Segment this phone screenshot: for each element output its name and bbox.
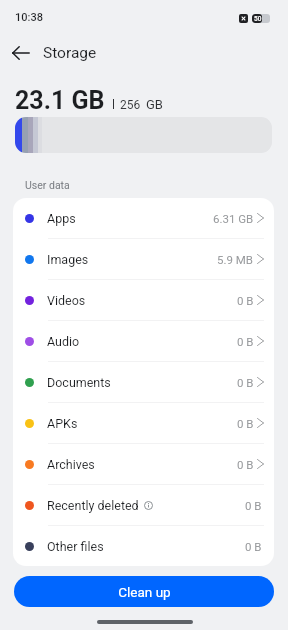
button[interactable]: Documents: [13, 362, 274, 402]
staticText: Storage: [43, 44, 97, 62]
staticText: 10:38: [15, 11, 43, 24]
button[interactable]: Other files: [13, 526, 274, 566]
staticText: 256: [120, 98, 141, 112]
staticText: 0 B: [245, 540, 262, 553]
staticText: Apps: [47, 211, 76, 226]
staticText: Videos: [47, 293, 86, 308]
other: Battery 50 percent: [252, 14, 270, 23]
button[interactable]: Back: [5, 37, 37, 69]
staticText: 5.9 MB: [217, 253, 254, 266]
staticText: 6.31 GB: [213, 212, 254, 225]
button[interactable]: Videos: [13, 280, 274, 320]
staticText: Other files: [47, 539, 104, 554]
staticText: Recently deleted: [47, 498, 139, 513]
staticText: 0 B: [237, 294, 254, 307]
staticText: Images: [47, 252, 89, 267]
staticText: User data: [25, 179, 70, 191]
staticText: Archives: [47, 457, 95, 472]
staticText: 0 B: [237, 335, 254, 348]
button[interactable]: Clean up: [14, 576, 274, 607]
staticText: Documents: [47, 375, 111, 390]
staticText: 23.1 GB: [15, 86, 105, 115]
button[interactable]: Recently deleted: [13, 485, 274, 525]
staticText: 0 B: [245, 499, 262, 512]
staticText: 0 B: [237, 376, 254, 389]
staticText: APKs: [47, 416, 78, 431]
staticText: Clean up: [118, 584, 171, 600]
button[interactable]: Audio: [13, 321, 274, 361]
staticText: 0 B: [237, 417, 254, 430]
button[interactable]: Images: [13, 239, 274, 279]
other: Silent mode: [239, 14, 248, 23]
button[interactable]: APKs: [13, 403, 274, 443]
staticText: GB: [146, 97, 163, 112]
staticText: Audio: [47, 334, 80, 349]
staticText: 0 B: [237, 458, 254, 471]
button[interactable]: Apps: [13, 198, 274, 238]
staticText: 50: [254, 15, 262, 23]
button[interactable]: Archives: [13, 444, 274, 484]
